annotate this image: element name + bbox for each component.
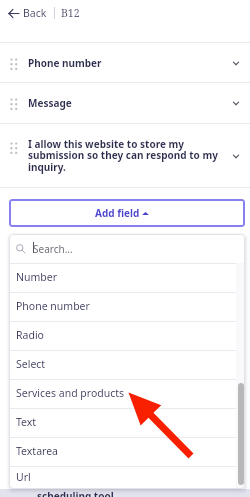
staticText: Services and products <box>16 386 125 400</box>
staticText: Select <box>16 357 46 371</box>
staticText: Search... <box>33 242 73 256</box>
staticText: Text <box>16 415 37 429</box>
button[interactable]: I allow this website to store my submiss… <box>0 124 250 187</box>
button[interactable]: Url <box>9 467 236 489</box>
staticText: Textarea <box>16 444 58 458</box>
staticText: Url <box>16 470 31 484</box>
button[interactable]: Add field <box>9 199 245 227</box>
staticText: B12 <box>61 6 80 20</box>
button[interactable]: Message <box>0 83 250 123</box>
button[interactable]: Radio <box>9 322 236 350</box>
button[interactable]: Number <box>9 264 236 292</box>
staticText: Radio <box>16 328 44 342</box>
staticText: Message <box>28 96 225 110</box>
button[interactable]: Select <box>9 351 236 379</box>
button[interactable]: Textarea <box>9 438 236 466</box>
staticText: Back <box>23 6 47 20</box>
staticText: Phone number <box>16 299 90 313</box>
staticText: Add field <box>95 206 140 220</box>
button[interactable]: Services and products <box>9 380 236 408</box>
button[interactable]: Phone number <box>9 293 236 321</box>
button[interactable]: Search... <box>9 234 245 263</box>
staticText: scheduling tool <box>37 489 114 497</box>
staticText: Phone number <box>28 56 225 70</box>
staticText: I allow this website to store my submiss… <box>28 137 225 174</box>
button[interactable]: Back <box>0 2 54 24</box>
staticText: Number <box>16 270 58 284</box>
button[interactable]: Phone number <box>0 43 250 82</box>
button[interactable]: Text <box>9 409 236 437</box>
